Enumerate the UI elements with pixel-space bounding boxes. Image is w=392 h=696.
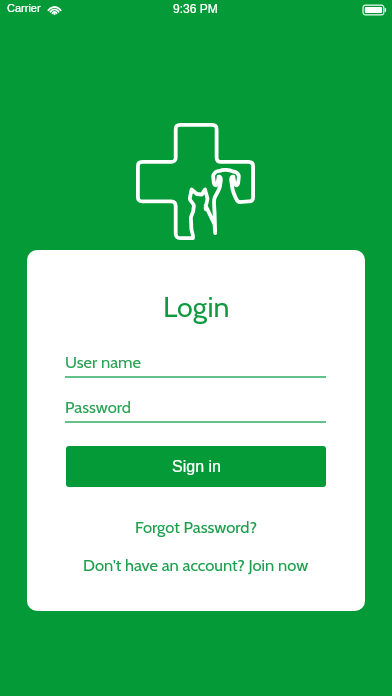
staticText: User name: [65, 352, 141, 372]
button[interactable]: Sign in: [66, 446, 326, 487]
other: Wi-Fi signal: [47, 4, 62, 15]
button[interactable]: Password: [65, 397, 326, 429]
staticText: Login: [163, 289, 230, 324]
staticText: Don't have an account? Join now: [83, 555, 309, 575]
button[interactable]: User name: [65, 352, 326, 384]
staticText: Password: [65, 397, 131, 417]
other: Battery full: [363, 4, 387, 16]
button[interactable]: Forgot Password?: [127, 514, 266, 540]
staticText: 9:36 PM: [173, 2, 218, 15]
button[interactable]: Don't have an account? Join now: [75, 552, 317, 578]
staticText: Forgot Password?: [135, 517, 258, 537]
other: Veterinary clinic logo: [136, 123, 255, 240]
staticText: Sign in: [172, 458, 221, 476]
staticText: Carrier: [7, 2, 41, 14]
